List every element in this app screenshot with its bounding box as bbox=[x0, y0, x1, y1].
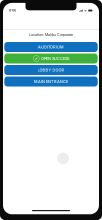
button[interactable]: OPEN SUCCESS bbox=[4, 53, 98, 63]
staticText: MAIN ENTRANCE bbox=[34, 79, 68, 84]
button[interactable]: AUDITORIUM bbox=[4, 42, 98, 52]
staticText: AUDITORIUM bbox=[38, 45, 64, 49]
staticText: Location: Malibu Corporate bbox=[29, 33, 73, 37]
staticText: LOBBY DOOR bbox=[37, 68, 64, 72]
staticText: 8:00 bbox=[9, 9, 16, 12]
button[interactable]: LOBBY DOOR bbox=[4, 65, 98, 75]
button[interactable]: MAIN ENTRANCE bbox=[4, 76, 98, 86]
staticText: OPEN SUCCESS bbox=[41, 56, 69, 61]
